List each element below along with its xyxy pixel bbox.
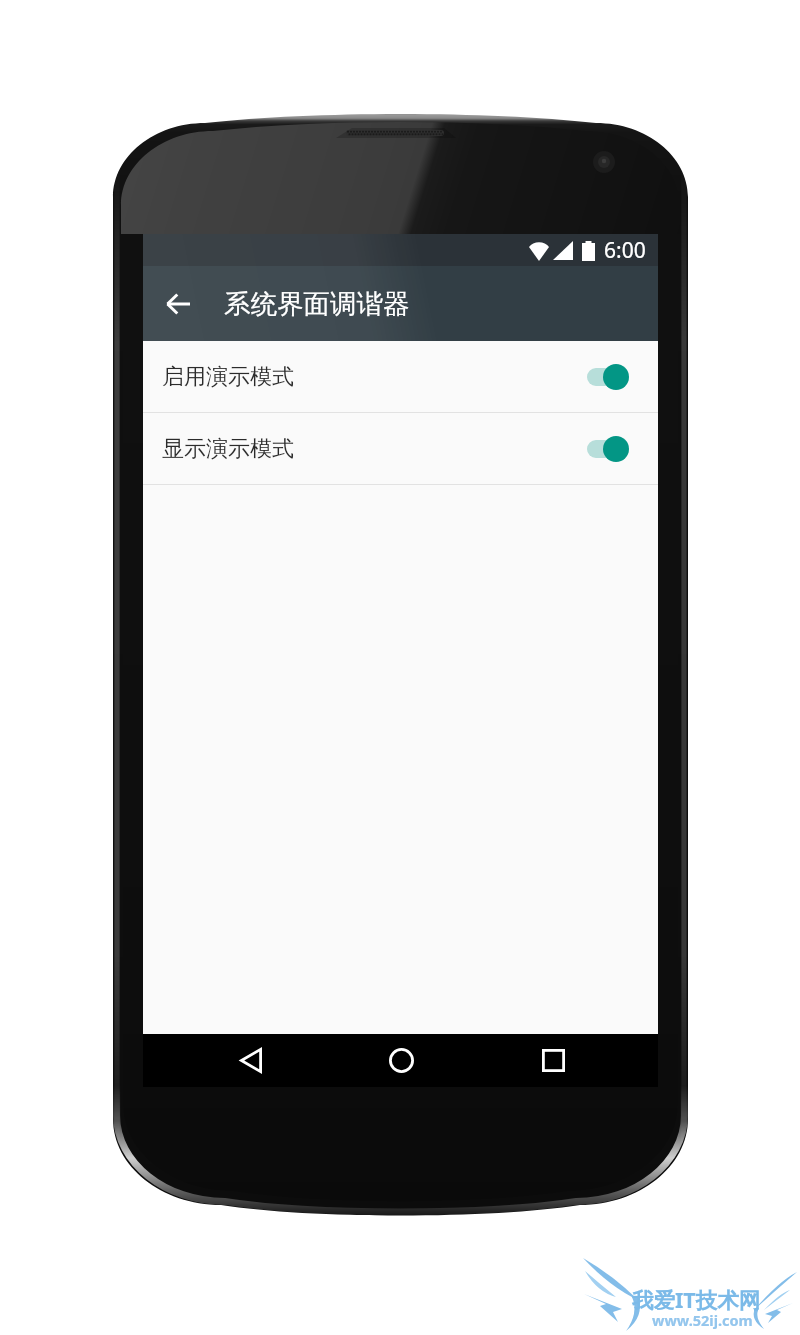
button[interactable]: Back — [223, 1034, 279, 1087]
button[interactable]: 显示演示模式 — [143, 413, 658, 484]
staticText: 显示演示模式 — [162, 435, 586, 463]
button[interactable]: 启用演示模式 — [143, 341, 658, 412]
staticText: 系统界面调谐器 — [224, 287, 410, 320]
staticText: 6:00 — [604, 236, 646, 265]
button[interactable]: Back — [154, 280, 202, 328]
staticText: www.52ij.com — [652, 1310, 753, 1330]
button[interactable]: Home — [373, 1034, 429, 1087]
staticText: 启用演示模式 — [162, 363, 586, 391]
button[interactable]: Recents — [525, 1034, 581, 1087]
staticText: 我爱IT技术网 — [632, 1285, 761, 1314]
